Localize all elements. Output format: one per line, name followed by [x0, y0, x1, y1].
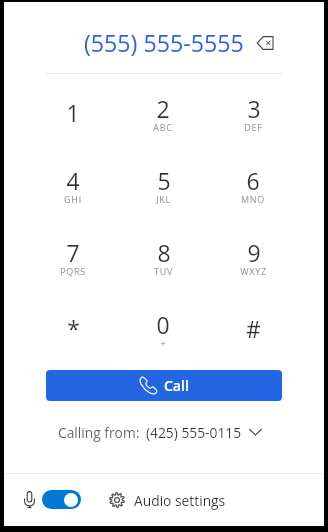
- staticText: JKL: [156, 193, 171, 205]
- button[interactable]: 1: [28, 78, 118, 150]
- staticText: +: [160, 337, 166, 349]
- staticText: TUV: [154, 265, 173, 277]
- button[interactable]: #: [208, 294, 298, 366]
- staticText: Audio settings: [134, 491, 226, 510]
- staticText: DEF: [244, 121, 263, 133]
- button[interactable]: 3: [208, 78, 298, 150]
- button[interactable]: Microphone on: [42, 490, 81, 509]
- staticText: 5: [157, 165, 171, 196]
- staticText: PQRS: [60, 265, 86, 277]
- staticText: 6: [246, 165, 260, 196]
- staticText: 0: [156, 309, 170, 340]
- staticText: ABC: [153, 121, 173, 133]
- staticText: 8: [157, 237, 171, 268]
- button[interactable]: 0: [118, 294, 208, 366]
- button[interactable]: 4: [28, 150, 118, 222]
- staticText: WXYZ: [240, 265, 267, 277]
- staticText: 9: [247, 237, 261, 268]
- button[interactable]: 5: [118, 150, 208, 222]
- staticText: (425) 555-0115: [146, 423, 242, 442]
- staticText: MNO: [241, 193, 265, 205]
- button[interactable]: Audio settings: [108, 489, 226, 511]
- staticText: GHI: [64, 193, 82, 205]
- staticText: #: [246, 313, 261, 344]
- button[interactable]: 8: [118, 222, 208, 294]
- button[interactable]: 6: [208, 150, 298, 222]
- staticText: *: [67, 313, 80, 344]
- button[interactable]: *: [28, 294, 118, 366]
- staticText: (555) 555-5555: [84, 27, 244, 59]
- staticText: Calling from:: [58, 423, 140, 442]
- staticText: 3: [247, 93, 261, 124]
- staticText: 4: [66, 165, 80, 196]
- staticText: Call: [164, 376, 189, 395]
- button[interactable]: Calling from:: [58, 421, 262, 443]
- staticText: 7: [66, 237, 80, 268]
- button[interactable]: Call: [46, 370, 282, 401]
- button[interactable]: 2: [118, 78, 208, 150]
- button[interactable]: 7: [28, 222, 118, 294]
- staticText: 2: [156, 93, 170, 124]
- button[interactable]: 9: [208, 222, 298, 294]
- staticText: 1: [66, 97, 80, 128]
- button[interactable]: Backspace: [253, 31, 277, 55]
